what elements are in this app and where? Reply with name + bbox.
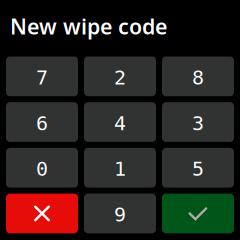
staticText: 0 xyxy=(36,158,48,180)
staticText: 9 xyxy=(114,203,126,226)
button[interactable]: Cancel xyxy=(6,194,78,233)
button[interactable]: 1 xyxy=(84,148,156,188)
button[interactable]: 5 xyxy=(162,148,234,188)
staticText: 4 xyxy=(114,112,126,135)
staticText: 3 xyxy=(192,112,204,135)
button[interactable]: 7 xyxy=(6,56,78,96)
staticText: 2 xyxy=(114,66,126,89)
button[interactable]: 4 xyxy=(84,102,156,142)
staticText: 1 xyxy=(114,158,126,180)
staticText: 5 xyxy=(192,158,204,180)
staticText: 8 xyxy=(192,66,204,89)
button[interactable]: 0 xyxy=(6,148,78,188)
button[interactable]: 6 xyxy=(6,102,78,142)
button[interactable]: 9 xyxy=(84,194,156,233)
staticText: 7 xyxy=(36,66,48,89)
button[interactable]: 8 xyxy=(162,56,234,96)
staticText: New wipe code xyxy=(10,12,167,40)
button[interactable]: 3 xyxy=(162,102,234,142)
button[interactable]: 2 xyxy=(84,56,156,96)
button[interactable]: Confirm xyxy=(162,194,234,233)
staticText: 6 xyxy=(36,112,48,135)
